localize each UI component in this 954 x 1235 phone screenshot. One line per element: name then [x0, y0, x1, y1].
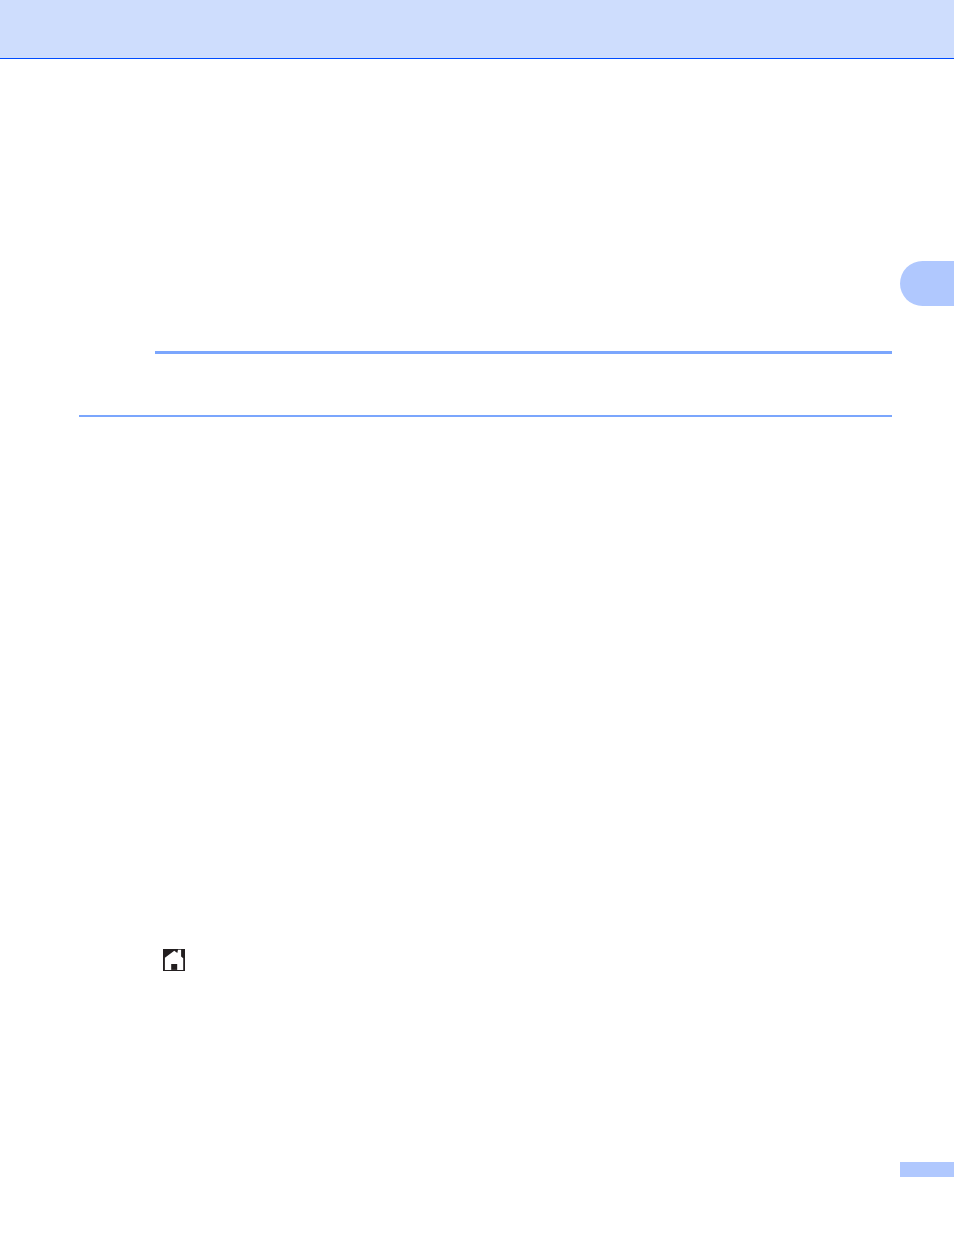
- button[interactable]: Home: [163, 949, 185, 971]
- button[interactable]: Section tab: [900, 261, 954, 306]
